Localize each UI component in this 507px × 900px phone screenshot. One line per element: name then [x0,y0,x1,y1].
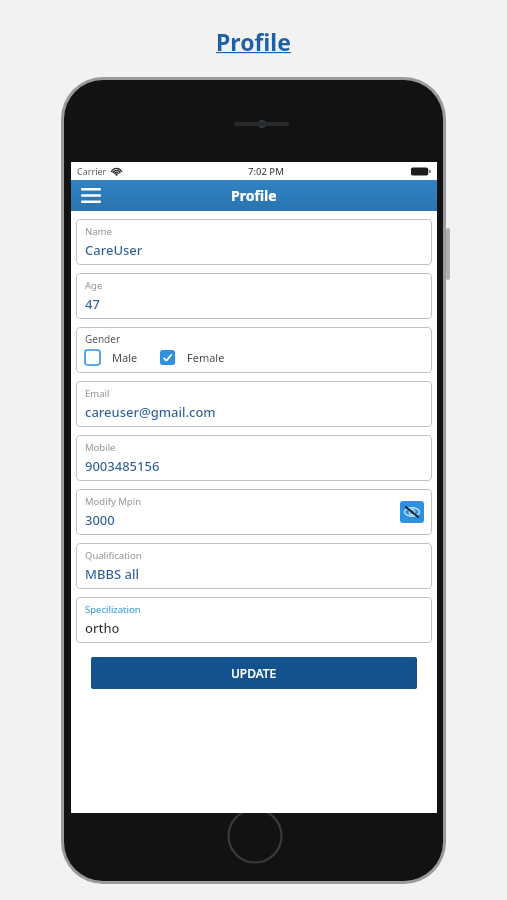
staticText: Male [112,350,138,365]
button[interactable]: Modify Mpin [76,489,432,535]
staticText: Female [187,350,225,365]
staticText: Gender [85,332,121,346]
staticText: ortho [85,619,120,637]
button[interactable]: Specilization [76,597,432,643]
staticText: Mobile [85,441,116,454]
button[interactable]: Show or hide Mpin [400,501,424,523]
button[interactable]: Age [76,273,432,319]
button[interactable]: Female [160,350,225,365]
staticText: 7:02 PM [248,165,284,178]
staticText: Specilization [85,603,141,616]
button[interactable]: UPDATE [91,657,417,689]
button[interactable]: Mobile [76,435,432,481]
staticText: 47 [85,295,100,313]
staticText: MBBS all [85,565,139,583]
staticText: Email [85,387,110,400]
staticText: careuser@gmail.com [85,403,216,421]
staticText: Profile [231,186,277,205]
staticText: CareUser [85,241,143,259]
button[interactable]: Open navigation menu [75,180,107,211]
staticText: 3000 [85,511,115,529]
staticText: Age [85,279,103,292]
button[interactable]: Male [85,350,138,365]
staticText: Modify Mpin [85,495,142,508]
button[interactable]: Qualification [76,543,432,589]
staticText: Name [85,225,112,238]
staticText: 9003485156 [85,457,160,475]
staticText: Carrier [77,165,107,177]
staticText: UPDATE [231,665,277,681]
staticText: Qualification [85,549,142,562]
staticText: Profile [216,26,291,57]
button[interactable]: Name [76,219,432,265]
button[interactable]: Email [76,381,432,427]
